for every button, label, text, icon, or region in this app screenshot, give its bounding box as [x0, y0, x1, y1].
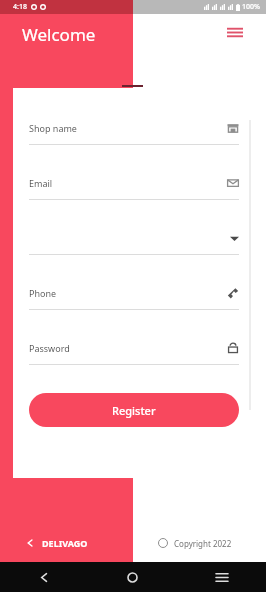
button[interactable]: Password [29, 340, 239, 365]
staticText: Copyright 2022 [174, 538, 232, 549]
button[interactable]: Home [88, 562, 177, 592]
staticText: Shop name [29, 122, 77, 134]
button[interactable]: Register [29, 393, 239, 427]
button[interactable]: Shop name [29, 120, 239, 145]
staticText: DELIVAGO [42, 537, 88, 549]
staticText: Password [29, 342, 70, 354]
button[interactable] [29, 230, 239, 255]
button[interactable]: Back [0, 562, 88, 592]
staticText: 100% [242, 2, 260, 12]
button[interactable]: Email [29, 175, 239, 200]
staticText: Register [112, 403, 156, 418]
staticText: Email [29, 177, 53, 189]
button[interactable]: Menu [224, 21, 246, 43]
staticText: Welcome [22, 23, 96, 46]
button[interactable]: Recent apps [177, 562, 266, 592]
staticText: 4:18 [13, 2, 27, 12]
button[interactable]: DELIVAGO [0, 526, 133, 560]
staticText: Phone [29, 287, 57, 299]
button[interactable]: Phone [29, 285, 239, 310]
